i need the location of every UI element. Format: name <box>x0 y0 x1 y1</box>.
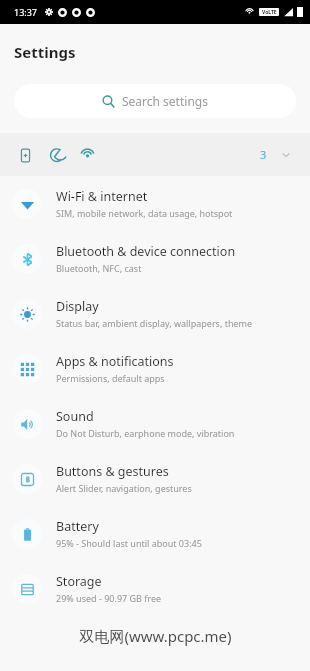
button[interactable]: Apps & notifications <box>0 341 310 396</box>
staticText: SIM, mobile network, data usage, hotspot <box>56 207 233 219</box>
button[interactable]: Search settings <box>14 84 296 118</box>
staticText: 双电网(www.pcpc.me) <box>79 626 232 646</box>
button[interactable]: Bluetooth & device connection <box>0 231 310 286</box>
staticText: Do Not Disturb, earphone mode, vibration <box>56 427 235 439</box>
staticText: Storage <box>56 573 102 590</box>
staticText: Permissions, default apps <box>56 372 165 384</box>
button[interactable]: 3 <box>256 143 296 166</box>
button[interactable]: Storage <box>0 561 310 616</box>
staticText: Alert Slider, navigation, gestures <box>56 482 192 494</box>
staticText: Search settings <box>122 93 208 109</box>
button[interactable]: Hotspot <box>76 144 98 166</box>
staticText: 29% used - 90.97 GB free <box>56 592 162 604</box>
staticText: 3 <box>260 147 267 162</box>
staticText: Display <box>56 298 99 315</box>
staticText: Apps & notifications <box>56 353 174 370</box>
staticText: 95% - Should last until about 03:45 <box>56 537 202 549</box>
staticText: Status bar, ambient display, wallpapers,… <box>56 317 253 329</box>
staticText: Sound <box>56 408 94 425</box>
staticText: Bluetooth, NFC, cast <box>56 262 142 274</box>
staticText: Bluetooth & device connection <box>56 243 236 260</box>
staticText: Wi-Fi & internet <box>56 188 148 205</box>
button[interactable]: Buttons & gestures <box>0 451 310 506</box>
button[interactable]: Battery <box>0 506 310 561</box>
staticText: 13:37 <box>14 6 38 18</box>
staticText: Buttons & gestures <box>56 463 169 480</box>
button[interactable]: Wi-Fi & internet <box>0 176 310 231</box>
button[interactable]: Do Not Disturb <box>45 144 67 166</box>
button[interactable]: Display <box>0 286 310 341</box>
button[interactable]: Sound <box>0 396 310 451</box>
staticText: Settings <box>14 42 76 62</box>
button[interactable]: Battery saver <box>14 144 36 166</box>
staticText: VoLTE <box>262 9 277 16</box>
staticText: Battery <box>56 518 99 535</box>
